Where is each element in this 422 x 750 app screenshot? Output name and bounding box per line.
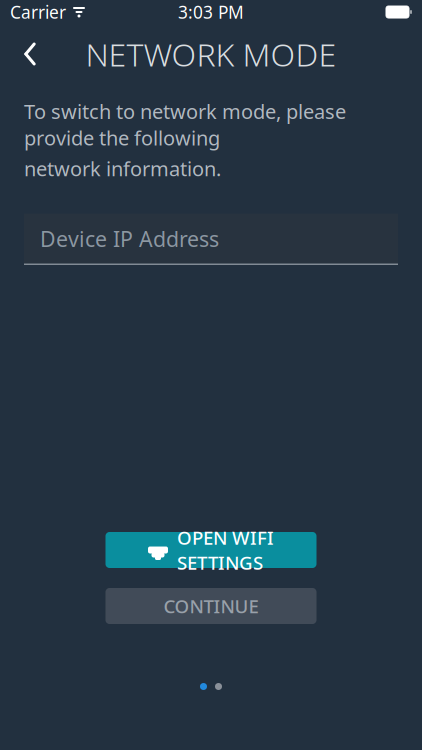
staticText: network information. <box>24 155 221 182</box>
staticText: To switch to network mode, please provid… <box>24 98 346 151</box>
staticText: Device IP Address <box>40 224 219 253</box>
staticText: CONTINUE <box>163 594 258 618</box>
button[interactable]: OPEN WIFI SETTINGS <box>105 532 316 568</box>
staticText: 3:03 PM <box>178 0 244 23</box>
staticText: Carrier <box>10 0 66 23</box>
button[interactable]: CONTINUE <box>105 588 316 624</box>
staticText: OPEN WIFI SETTINGS <box>177 525 274 575</box>
button[interactable]: Back <box>8 32 52 76</box>
staticText: NETWORK MODE <box>85 33 336 75</box>
